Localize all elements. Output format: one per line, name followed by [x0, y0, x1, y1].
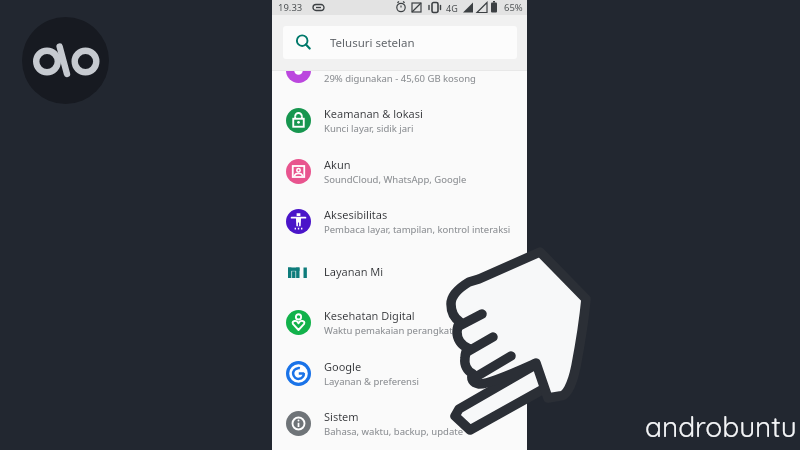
staticText: Bahasa, waktu, backup, update — [324, 425, 463, 438]
staticText: Layanan & preferensi — [324, 375, 419, 388]
staticText: Kesehatan Digital — [324, 308, 415, 323]
button[interactable]: Kesehatan Digital — [272, 297, 527, 347]
staticText: Layanan Mi — [324, 264, 384, 279]
staticText: androbuntu — [645, 409, 797, 444]
button[interactable]: Androbuntu logo — [22, 17, 109, 104]
staticText: 4G — [446, 2, 458, 14]
button[interactable]: Aksesibilitas — [272, 196, 527, 246]
staticText: Sistem — [324, 409, 359, 424]
staticText: 29% digunakan - 45,60 GB kosong — [324, 72, 476, 85]
button[interactable]: Keamanan & lokasi — [272, 95, 527, 145]
staticText: 19.33 — [278, 1, 303, 14]
staticText: Aksesibilitas — [324, 207, 388, 222]
button[interactable]: Telusuri setelan — [283, 26, 517, 59]
staticText: SoundCloud, WhatsApp, Google — [324, 173, 467, 186]
staticText: Waktu pemakaian perangkat, ... — [324, 324, 466, 337]
staticText: Kunci layar, sidik jari — [324, 122, 414, 135]
button[interactable]: Penyimpanan — [272, 45, 527, 95]
button[interactable]: Layanan Mi — [272, 247, 527, 297]
staticText: Akun — [324, 157, 351, 172]
button[interactable]: Akun — [272, 146, 527, 196]
button[interactable]: Sistem — [272, 398, 527, 448]
staticText: Telusuri setelan — [330, 35, 415, 51]
staticText: 65% — [504, 1, 523, 14]
staticText: Pembaca layar, tampilan, kontrol interak… — [324, 223, 511, 236]
button[interactable]: Google — [272, 348, 527, 398]
staticText: Google — [324, 359, 362, 374]
staticText: Keamanan & lokasi — [324, 106, 423, 121]
staticText: Penyimpanan — [324, 56, 396, 71]
